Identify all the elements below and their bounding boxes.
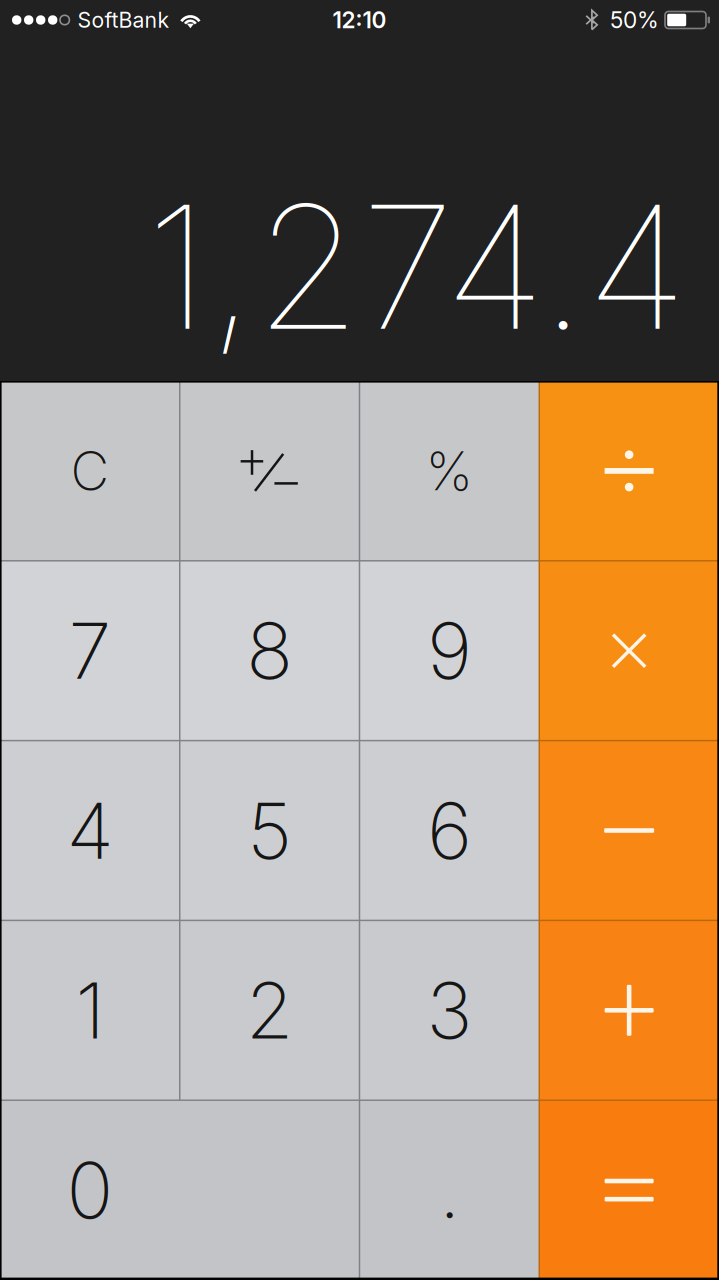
button[interactable]: 4 bbox=[0, 741, 180, 920]
staticText: % bbox=[425, 439, 473, 503]
button[interactable]: Minus bbox=[539, 741, 719, 920]
staticText: 12:10 bbox=[332, 6, 386, 34]
button[interactable]: C bbox=[0, 381, 180, 561]
button[interactable]: . bbox=[359, 1100, 539, 1280]
button[interactable]: % bbox=[359, 381, 539, 561]
button[interactable]: 2 bbox=[180, 920, 360, 1100]
button[interactable]: 8 bbox=[180, 561, 360, 741]
staticText: 8 bbox=[246, 604, 293, 697]
staticText: 2 bbox=[246, 963, 294, 1057]
staticText: 4 bbox=[66, 784, 113, 877]
button[interactable]: 9 bbox=[359, 561, 539, 741]
staticText: SoftBank bbox=[77, 7, 169, 33]
button[interactable]: 6 bbox=[359, 741, 539, 920]
button[interactable]: 1 bbox=[0, 920, 180, 1100]
button[interactable]: Plus bbox=[539, 920, 719, 1100]
button[interactable]: Divide bbox=[539, 381, 719, 561]
button[interactable]: Equals bbox=[539, 1100, 719, 1280]
staticText: 9 bbox=[427, 604, 472, 697]
staticText: 6 bbox=[427, 784, 472, 877]
button[interactable]: 3 bbox=[359, 920, 539, 1100]
button[interactable]: Plus Minus bbox=[180, 381, 360, 561]
staticText: 0 bbox=[66, 1143, 113, 1237]
staticText: 50% bbox=[610, 6, 659, 34]
button[interactable]: 0 bbox=[0, 1100, 359, 1280]
staticText: 5 bbox=[247, 784, 292, 877]
staticText: C bbox=[70, 439, 109, 503]
staticText: 7 bbox=[68, 604, 111, 697]
staticText: 3 bbox=[426, 963, 472, 1057]
button[interactable]: 7 bbox=[0, 561, 180, 741]
staticText: 1,274.4 bbox=[146, 163, 688, 370]
staticText: . bbox=[439, 1143, 460, 1237]
button[interactable]: 5 bbox=[180, 741, 360, 920]
button[interactable]: Multiply bbox=[539, 561, 719, 741]
staticText: 1 bbox=[75, 963, 104, 1057]
